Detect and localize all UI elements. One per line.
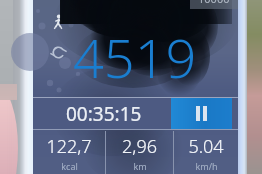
staticText: km/h xyxy=(195,160,218,172)
staticText: 4519 xyxy=(73,20,197,94)
button[interactable]: 122,7 xyxy=(33,131,105,174)
button[interactable]: Activity xyxy=(50,14,67,31)
staticText: km xyxy=(133,160,147,172)
button[interactable]: Pause xyxy=(171,98,232,129)
staticText: 2,96 xyxy=(122,134,157,159)
button[interactable]: 2,96 xyxy=(106,131,173,174)
button[interactable]: 5.04 xyxy=(174,131,238,174)
button[interactable]: 10000 xyxy=(190,0,238,9)
staticText: 00:35:15 xyxy=(66,101,142,127)
staticText: 122,7 xyxy=(46,134,92,159)
button[interactable]: Refresh xyxy=(51,45,66,60)
staticText: kcal xyxy=(61,160,78,172)
button[interactable]: 00:35:15 xyxy=(33,98,175,129)
staticText: 10000 xyxy=(198,0,230,6)
staticText: 5.04 xyxy=(188,134,224,159)
